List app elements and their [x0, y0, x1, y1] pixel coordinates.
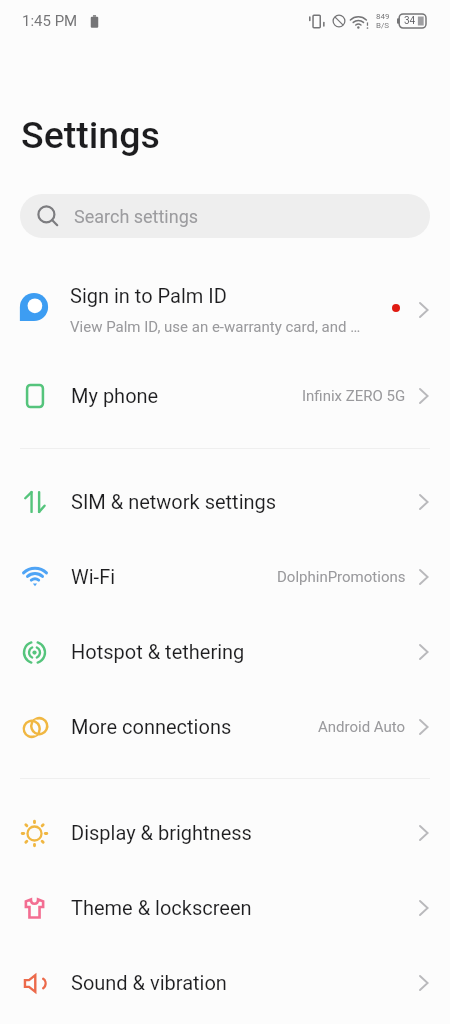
- button[interactable]: Sound & vibration: [0, 945, 450, 1020]
- other: Open: [414, 300, 434, 320]
- staticText: Display & brightness: [71, 821, 252, 844]
- button[interactable]: Hotspot & tethering: [0, 614, 450, 689]
- other: Open: [414, 717, 434, 737]
- button[interactable]: Settings: [21, 113, 160, 157]
- button[interactable]: Sign in to Palm ID: [0, 265, 450, 355]
- staticText: Theme & lockscreen: [71, 896, 252, 919]
- other: Open: [414, 492, 434, 512]
- staticText: Sign in to Palm ID: [70, 284, 227, 307]
- button[interactable]: More connections: [0, 689, 450, 764]
- button[interactable]: Display & brightness: [0, 795, 450, 870]
- staticText: Search settings: [74, 206, 199, 227]
- staticText: 1:45 PM: [22, 12, 78, 30]
- button[interactable]: Wi-Fi: [0, 539, 450, 614]
- staticText: Sound & vibration: [71, 971, 227, 994]
- staticText: SIM & network settings: [71, 490, 277, 513]
- staticText: More connections: [71, 715, 232, 738]
- other: Open: [414, 567, 434, 587]
- staticText: View Palm ID, use an e-warranty card, an…: [70, 318, 361, 336]
- other: Open: [414, 973, 434, 993]
- button[interactable]: SIM & network settings: [0, 464, 450, 539]
- staticText: Android Auto: [318, 718, 406, 736]
- button[interactable]: Search settings: [20, 194, 430, 238]
- staticText: B/S: [376, 21, 390, 30]
- staticText: DolphinPromotions: [277, 568, 406, 586]
- button[interactable]: My phone: [0, 358, 450, 433]
- button[interactable]: Theme & lockscreen: [0, 870, 450, 945]
- staticText: 34: [404, 15, 416, 27]
- staticText: Wi-Fi: [71, 565, 116, 588]
- other: Open: [414, 823, 434, 843]
- other: Open: [414, 898, 434, 918]
- other: Open: [414, 642, 434, 662]
- other: Open: [414, 386, 434, 406]
- staticText: Hotspot & tethering: [71, 640, 245, 663]
- staticText: Infinix ZERO 5G: [302, 387, 406, 405]
- staticText: My phone: [71, 384, 159, 407]
- staticText: 849: [376, 12, 390, 21]
